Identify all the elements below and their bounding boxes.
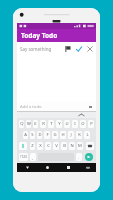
button[interactable]: Flag bbox=[62, 43, 73, 54]
staticText: N bbox=[70, 143, 74, 149]
staticText: M bbox=[78, 143, 82, 149]
button[interactable]: Recents bbox=[58, 163, 79, 172]
button[interactable]: Y bbox=[56, 120, 62, 128]
staticText: , bbox=[32, 155, 34, 160]
button[interactable]: S bbox=[30, 131, 35, 139]
button[interactable]: D bbox=[37, 131, 42, 139]
button[interactable]: Backspace bbox=[86, 142, 94, 150]
button[interactable]: G bbox=[52, 131, 58, 139]
button[interactable]: Save bbox=[73, 43, 84, 54]
button[interactable]: R bbox=[40, 120, 46, 128]
staticText: A bbox=[24, 132, 27, 138]
staticText: W bbox=[27, 121, 31, 127]
staticText: I bbox=[74, 121, 76, 127]
button[interactable]: T bbox=[48, 120, 54, 128]
staticText: O bbox=[81, 121, 85, 127]
button[interactable]: Close bbox=[84, 43, 95, 54]
button[interactable]: Add a todo bbox=[17, 102, 96, 111]
staticText: ?123 bbox=[20, 155, 27, 159]
button[interactable]: . bbox=[76, 153, 82, 161]
staticText: C bbox=[47, 143, 50, 149]
button[interactable]: H bbox=[60, 131, 66, 139]
button[interactable]: L bbox=[84, 131, 90, 139]
staticText: Add a todo bbox=[20, 104, 87, 110]
staticText: P bbox=[90, 121, 93, 127]
button[interactable]: P bbox=[88, 120, 94, 128]
staticText: S bbox=[31, 132, 34, 138]
button[interactable]: Z bbox=[30, 142, 35, 150]
button[interactable]: K bbox=[76, 131, 82, 139]
staticText: J bbox=[70, 132, 72, 138]
staticText: Y bbox=[58, 121, 61, 127]
staticText: X bbox=[39, 143, 42, 149]
staticText: H bbox=[61, 132, 65, 138]
button[interactable]: U bbox=[64, 120, 70, 128]
button[interactable]: C bbox=[45, 142, 51, 150]
button[interactable]: , bbox=[30, 153, 36, 161]
staticText: Z bbox=[31, 143, 34, 149]
staticText: R bbox=[42, 121, 45, 127]
staticText: E bbox=[34, 121, 37, 127]
staticText: F bbox=[46, 132, 49, 138]
button[interactable]: Q bbox=[19, 120, 24, 128]
staticText: K bbox=[78, 132, 81, 138]
button[interactable]: B bbox=[61, 142, 67, 150]
staticText: L bbox=[86, 132, 89, 138]
button[interactable]: Send bbox=[84, 153, 94, 161]
button[interactable]: Home bbox=[37, 163, 58, 172]
staticText: V bbox=[55, 143, 58, 149]
button[interactable]: A bbox=[23, 131, 28, 139]
staticText: D bbox=[38, 132, 42, 138]
button[interactable]: M bbox=[77, 142, 83, 150]
button[interactable]: Today Todo bbox=[17, 29, 96, 42]
button[interactable]: V bbox=[53, 142, 59, 150]
button[interactable]: Shift bbox=[19, 142, 27, 150]
staticText: U bbox=[65, 121, 69, 127]
staticText: B bbox=[63, 143, 66, 149]
button[interactable]: Say something bbox=[20, 46, 62, 52]
button[interactable]: J bbox=[68, 131, 74, 139]
button[interactable]: I bbox=[72, 120, 78, 128]
staticText: T bbox=[50, 121, 53, 127]
button[interactable]: Send bbox=[87, 103, 95, 111]
button[interactable]: ?123 bbox=[19, 153, 28, 161]
staticText: . bbox=[78, 155, 80, 160]
button[interactable]: Hide keyboard bbox=[79, 163, 96, 172]
staticText: G bbox=[53, 132, 57, 138]
staticText: Today Todo bbox=[21, 31, 58, 40]
button[interactable]: O bbox=[80, 120, 86, 128]
button[interactable]: X bbox=[37, 142, 43, 150]
button[interactable]: W bbox=[26, 120, 31, 128]
button[interactable]: E bbox=[33, 120, 38, 128]
button[interactable]: F bbox=[44, 131, 50, 139]
staticText: Q bbox=[20, 121, 24, 127]
button[interactable]: N bbox=[69, 142, 75, 150]
button[interactable]: Back bbox=[17, 163, 37, 172]
